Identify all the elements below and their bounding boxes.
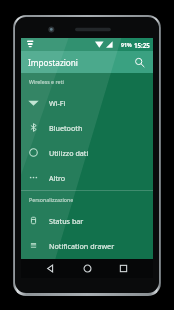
staticText: Altro (49, 173, 66, 183)
staticText: Wi-Fi (49, 98, 66, 108)
button[interactable]: Altro (21, 165, 153, 190)
button[interactable]: Status bar (21, 208, 153, 233)
staticText: Impostazioni (28, 57, 133, 68)
button[interactable]: Notification drawer (21, 233, 153, 258)
staticText: Notification drawer (49, 241, 115, 251)
button[interactable]: Bluetooth (21, 115, 153, 140)
button[interactable]: Back (43, 261, 58, 276)
button[interactable]: Home (80, 261, 95, 276)
staticText: 91% (121, 41, 132, 48)
button[interactable]: Wi-Fi (21, 90, 153, 115)
staticText: 15:25 (134, 41, 150, 49)
staticText: Status bar (49, 216, 84, 226)
staticText: Utilizzo dati (49, 148, 89, 158)
staticText: Personalizzazione (29, 196, 74, 203)
staticText: Bluetooth (49, 123, 83, 133)
staticText: Wireless e reti (29, 78, 64, 85)
button[interactable]: Recents (116, 261, 131, 276)
button[interactable]: Utilizzo dati (21, 140, 153, 165)
button[interactable]: Search (133, 56, 146, 69)
